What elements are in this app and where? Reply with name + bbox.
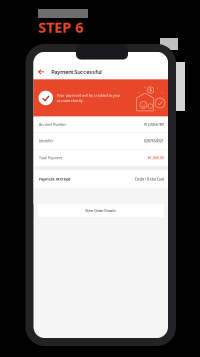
staticText: Account Number — [39, 122, 66, 127]
staticText: Payment Method — [39, 176, 70, 182]
staticText: Payment Successful — [51, 68, 101, 75]
staticText: STEP 6 — [38, 17, 83, 37]
button[interactable]: View Order Details — [37, 204, 164, 217]
button[interactable]: Total Payment — [33, 150, 168, 166]
button[interactable]: Identifier — [33, 133, 168, 149]
button[interactable]: Payment Method — [33, 170, 168, 188]
button[interactable]: Account Number — [33, 117, 168, 132]
button[interactable]: Back — [36, 67, 47, 77]
staticText: Credit / Debit Card — [135, 177, 164, 181]
staticText: ₱1,800.00 — [148, 155, 164, 160]
staticText: Identifier — [39, 138, 53, 143]
staticText: 0123456789 — [144, 122, 164, 127]
staticText: Your payment will be credited to your ac… — [57, 93, 121, 103]
staticText: View Order Details — [85, 208, 116, 213]
staticText: 0287654321 — [144, 138, 164, 143]
staticText: Total Payment — [39, 155, 62, 160]
